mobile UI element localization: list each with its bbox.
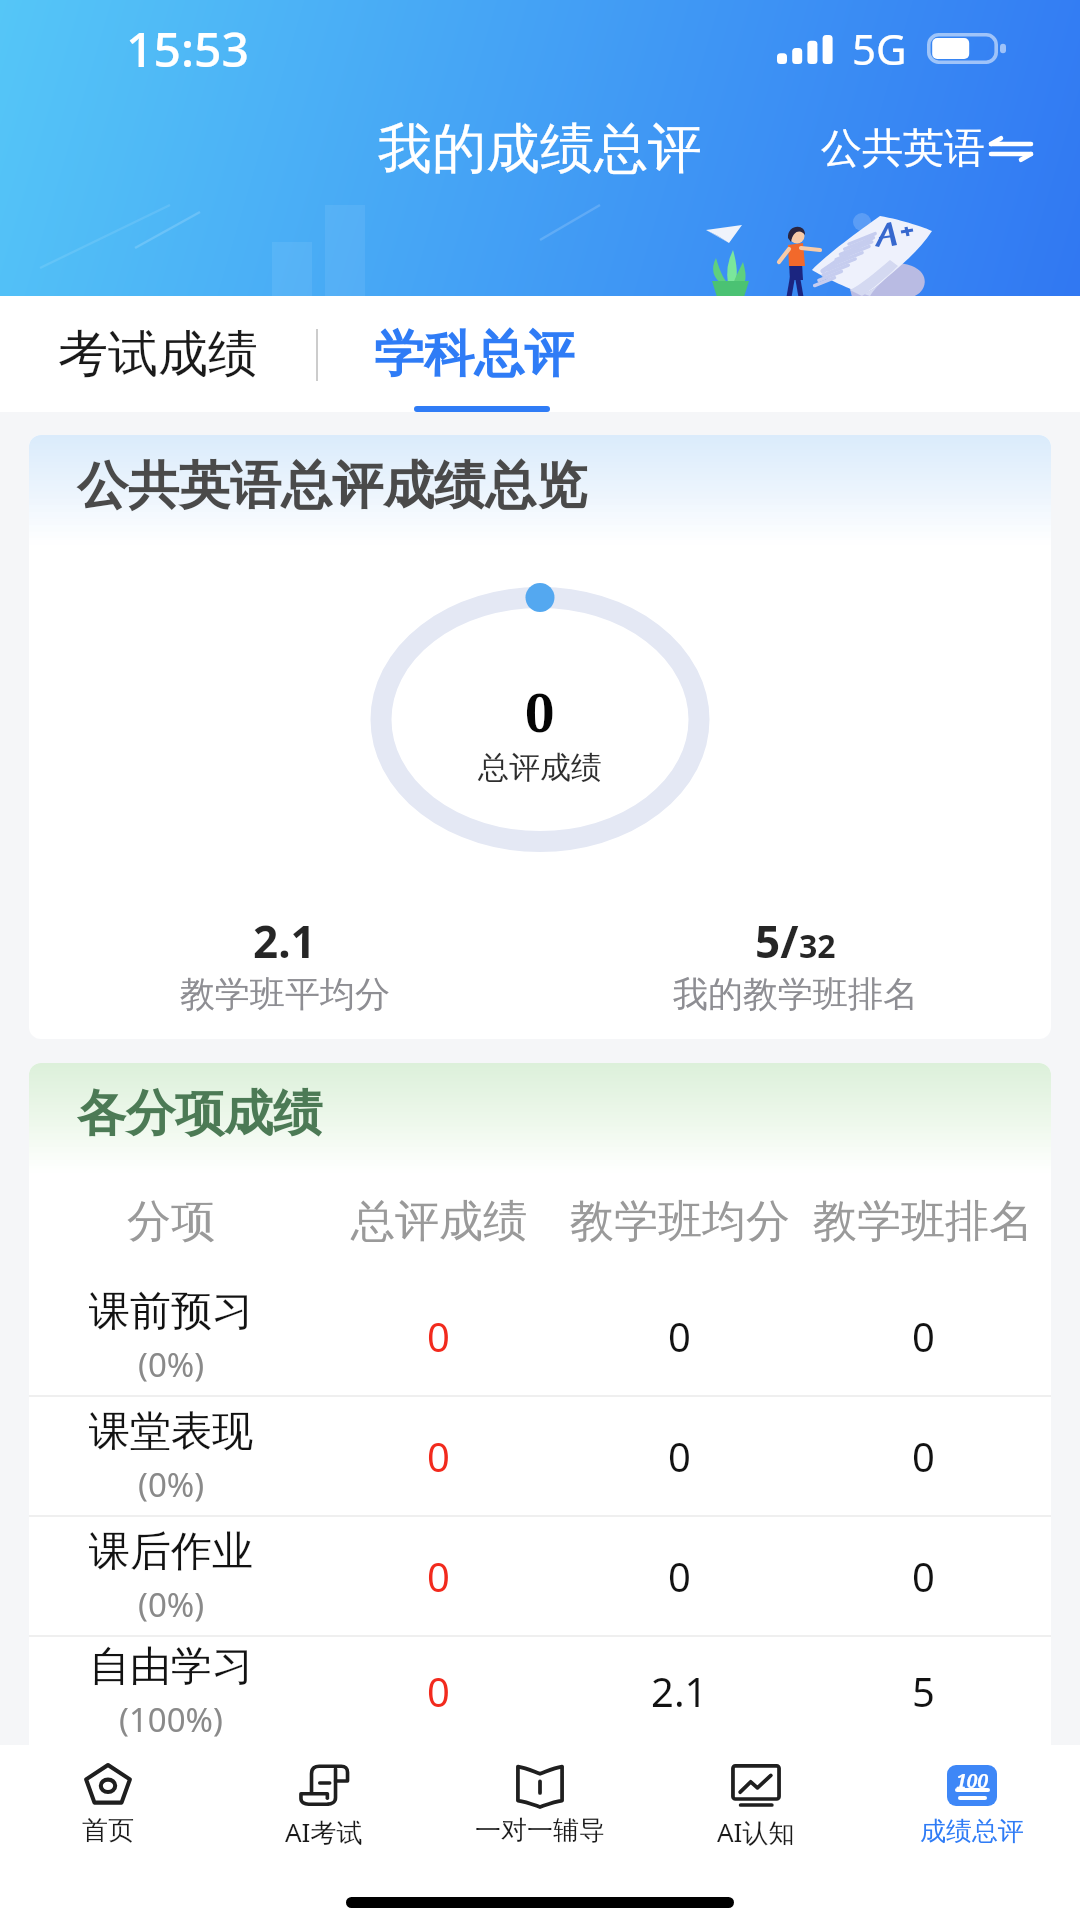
staticText: 0 [912,1549,935,1603]
button[interactable]: 一对一辅导 [432,1745,648,1885]
button[interactable]: 100 [864,1745,1080,1885]
staticText: 我的教学班排名 [673,972,918,1016]
button[interactable]: 考试成绩 [0,323,258,386]
staticText: 我的成绩总评 [378,115,702,183]
staticText: 5/ [755,911,799,971]
staticText: 0 [912,1429,935,1483]
staticText: 教学班均分 [570,1194,790,1249]
staticText: 学科总评 [374,323,574,386]
button[interactable]: 课前预习 [29,1277,1051,1395]
staticText: 100 [956,1768,988,1794]
staticText: 分项 [127,1194,215,1249]
staticText: 公共英语 [821,123,985,175]
staticText: (0%) [138,1582,205,1627]
staticText: AI考试 [285,1814,363,1850]
other: 切换科目 [988,131,1034,167]
staticText: 教学班平均分 [180,972,390,1016]
button[interactable]: AI认知 [648,1745,864,1885]
staticText: 0 [912,1309,935,1363]
staticText: 5 [912,1664,935,1718]
staticText: (0%) [138,1462,205,1507]
button[interactable]: 自由学习 [29,1637,1051,1745]
staticText: 0 [427,1549,450,1603]
staticText: 考试成绩 [58,323,258,386]
staticText: 0 [427,1664,450,1718]
staticText: 0 [427,1309,450,1363]
staticText: 0 [525,676,555,747]
staticText: 成绩总评 [920,1815,1024,1848]
staticText: 公共英语总评成绩总览 [77,454,587,518]
staticText: 2.1 [651,1664,708,1718]
staticText: 自由学习 [89,1641,253,1693]
button[interactable]: 公共英语 [821,123,1080,175]
button[interactable]: 课堂表现 [29,1397,1051,1515]
staticText: 0 [427,1429,450,1483]
staticText: 32 [799,924,836,968]
staticText: 5G [852,20,907,77]
staticText: 一对一辅导 [475,1814,605,1847]
staticText: (0%) [138,1342,205,1387]
staticText: 教学班排名 [813,1194,1033,1249]
staticText: 2.1 [253,911,316,971]
button[interactable]: 首页 [0,1745,216,1885]
staticText: 课后作业 [89,1526,253,1578]
staticText: 0 [668,1549,691,1603]
staticText: 总评成绩 [478,748,602,787]
staticText: 0 [668,1309,691,1363]
staticText: 各分项成绩 [77,1083,322,1145]
staticText: (100%) [119,1697,223,1742]
staticText: 课前预习 [89,1286,253,1338]
staticText: 0 [668,1429,691,1483]
button[interactable]: AI考试 [216,1745,432,1885]
button[interactable]: 课后作业 [29,1517,1051,1635]
staticText: 总评成绩 [351,1194,527,1249]
staticText: 首页 [82,1814,134,1847]
staticText: 课堂表现 [89,1406,253,1458]
staticText: AI认知 [717,1814,795,1850]
button[interactable]: 学科总评 [374,323,574,386]
staticText: 15:53 [126,16,249,81]
